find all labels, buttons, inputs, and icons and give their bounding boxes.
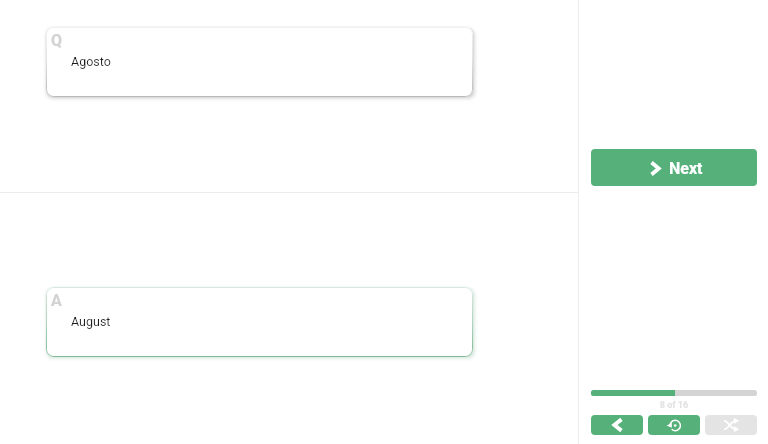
button[interactable]: A — [46, 287, 473, 357]
staticText: Next — [669, 159, 703, 178]
button[interactable]: Q — [46, 27, 473, 97]
staticText: 8 of 16 — [591, 400, 757, 411]
staticText: August — [71, 314, 111, 329]
button[interactable]: Restart — [648, 415, 700, 435]
staticText: Q — [51, 31, 63, 50]
button[interactable]: Previous card — [591, 415, 643, 435]
button[interactable]: Shuffle — [705, 415, 757, 435]
button[interactable]: Next — [591, 149, 757, 186]
staticText: A — [51, 291, 62, 310]
staticText: Agosto — [71, 54, 111, 69]
